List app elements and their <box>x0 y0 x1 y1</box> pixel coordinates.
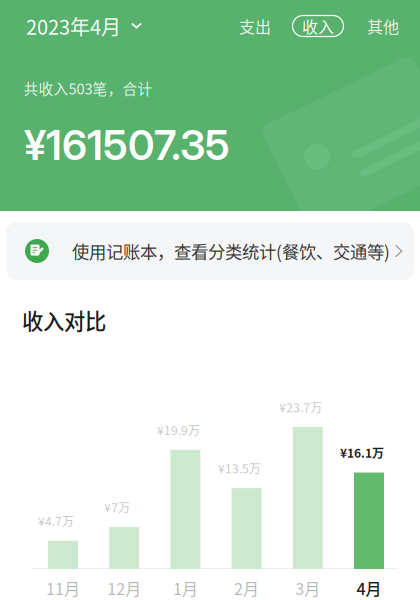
staticText: 3月 <box>295 576 320 600</box>
staticText: ¥7万 <box>104 498 130 516</box>
staticText: ¥19.9万 <box>157 421 200 438</box>
staticText: ¥16.1万 <box>340 444 384 461</box>
staticText: ¥161507.35 <box>24 120 230 170</box>
staticText: 2月 <box>234 576 259 600</box>
staticText: 11月 <box>46 576 80 600</box>
button[interactable]: 使用记账本，查看分类统计(餐饮、交通等) <box>6 222 414 280</box>
staticText: 1月 <box>173 576 198 600</box>
staticText: ¥23.7万 <box>279 398 322 416</box>
staticText: 使用记账本，查看分类统计(餐饮、交通等) <box>72 238 390 264</box>
staticText: 2023年4月 <box>26 11 121 40</box>
staticText: 12月 <box>107 576 141 600</box>
staticText: 共收入503笔，合计 <box>23 77 152 99</box>
staticText: ¥4.7万 <box>38 512 74 530</box>
button[interactable]: 收入 <box>292 15 343 36</box>
button[interactable]: 支出 <box>238 15 272 36</box>
staticText: 其他 <box>367 14 399 38</box>
staticText: 收入 <box>302 14 334 38</box>
staticText: 4月 <box>356 576 381 600</box>
button[interactable]: 其他 <box>366 15 400 36</box>
staticText: 支出 <box>239 14 271 38</box>
staticText: 收入对比 <box>22 305 106 335</box>
staticText: ¥13.5万 <box>218 459 261 477</box>
button[interactable]: 2023年4月 <box>26 11 142 40</box>
